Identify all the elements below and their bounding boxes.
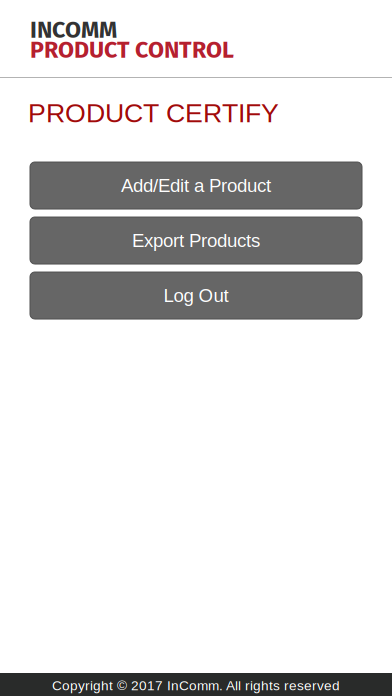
staticText: Add/Edit a Product [121,175,271,196]
staticText: PRODUCT CONTROL [30,36,234,64]
button[interactable]: Export Products [30,217,362,264]
button[interactable]: Log Out [30,272,362,319]
staticText: Export Products [132,230,260,251]
staticText: INCOMM [30,16,117,44]
staticText: PRODUCT CERTIFY [28,98,279,128]
staticText: Copyright © 2017 InComm. All rights rese… [52,678,340,693]
button[interactable]: Add/Edit a Product [30,162,362,209]
staticText: Log Out [163,285,228,306]
